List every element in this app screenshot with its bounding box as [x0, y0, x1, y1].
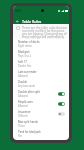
button[interactable]: Toggle: [58, 111, 65, 117]
staticText: Eight decks: [18, 44, 32, 48]
staticText: Any two cards: [18, 84, 36, 88]
staticText: Blackjack: [18, 50, 30, 54]
button[interactable]: Insurance: [18, 109, 65, 119]
staticText: Insurance: [18, 110, 31, 114]
button[interactable]: Max split hands: [18, 119, 65, 129]
button[interactable]: Blackjack: [18, 49, 65, 59]
staticText: Allowed: [18, 74, 28, 78]
button[interactable]: Back: [15, 19, 20, 24]
staticText: These are the table rules that are curre…: [22, 26, 67, 39]
staticText: Table Rules: [22, 19, 42, 24]
button[interactable]: Peek for blackjack: [18, 129, 65, 139]
staticText: Allowed: [18, 104, 28, 108]
button[interactable]: Soft 17: [18, 59, 65, 69]
button[interactable]: Number of decks: [18, 39, 65, 49]
button[interactable]: Toggle: [58, 101, 65, 107]
staticText: Number of decks: [18, 40, 40, 44]
staticText: Resplit aces: [18, 100, 33, 104]
staticText: Offered: [18, 114, 28, 118]
button[interactable]: Late surrender: [18, 69, 65, 79]
staticText: Three: [18, 124, 25, 128]
staticText: Max split hands: [18, 120, 38, 124]
staticText: Peek for blackjack: [18, 130, 41, 134]
button[interactable]: Double: [18, 79, 65, 89]
staticText: Dealer hits: [18, 64, 32, 68]
staticText: Soft 17: [18, 60, 27, 64]
staticText: Yes: [18, 134, 23, 138]
staticText: Late surrender: [18, 70, 37, 74]
staticText: Allowed: [18, 94, 28, 98]
button[interactable]: Double after split: [18, 89, 65, 99]
staticText: Double after split: [18, 90, 40, 94]
button[interactable]: Toggle: [58, 91, 65, 97]
staticText: Pays 3 to 2: [18, 54, 32, 58]
button[interactable]: Resplit aces: [18, 99, 65, 109]
staticText: Double: [18, 80, 28, 84]
